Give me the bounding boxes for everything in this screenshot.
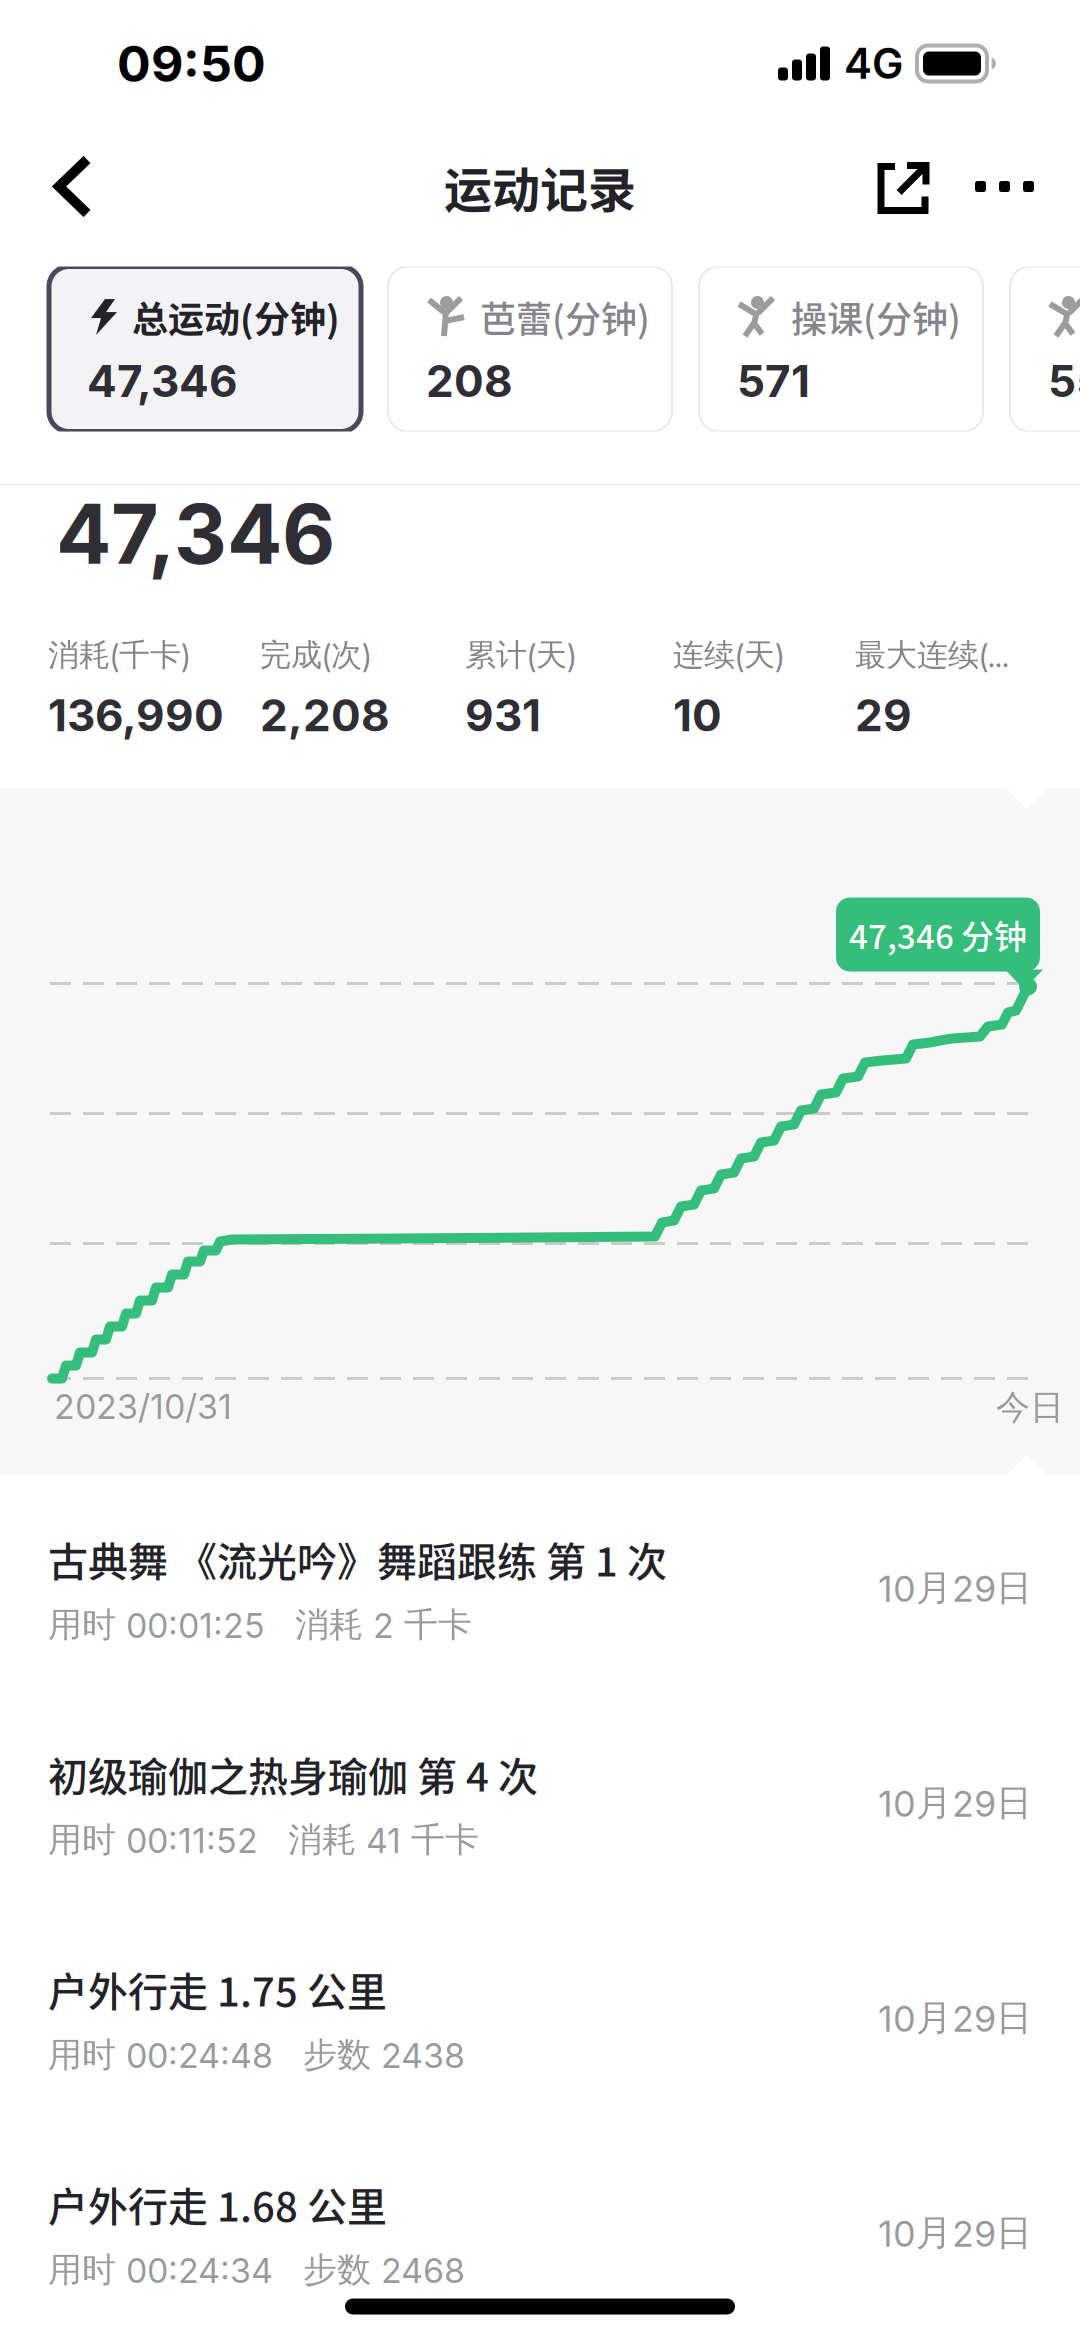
staticText: 消耗 41 千卡 — [288, 1819, 479, 1861]
staticText: 完成(次) — [260, 636, 371, 674]
staticText: 10月29日 — [878, 1996, 1032, 2040]
staticText: 连续(天) — [673, 636, 784, 674]
button[interactable]: 跳绳(分钟) — [1010, 266, 1080, 431]
staticText: 47,346 — [87, 355, 238, 407]
staticText: 571 — [737, 355, 810, 407]
staticText: 总运动(分钟) — [132, 291, 340, 343]
button[interactable]: 古典舞 《流光吟》舞蹈跟练 第 1 次 — [0, 1480, 1080, 1695]
button[interactable]: More — [933, 154, 1080, 218]
staticText: 最大连续(... — [855, 636, 1009, 674]
staticText: 2,208 — [260, 689, 390, 741]
staticText: 今日 — [996, 1386, 1064, 1428]
staticText: 10月29日 — [878, 1566, 1032, 1610]
staticText: 步数 2438 — [303, 2034, 465, 2076]
button[interactable]: 芭蕾(分钟) — [388, 266, 672, 431]
button[interactable]: 总运动(分钟) — [49, 266, 361, 431]
staticText: 136,990 — [48, 689, 224, 741]
staticText: 用时 00:24:48 — [48, 2034, 273, 2076]
staticText: 208 — [426, 355, 513, 407]
staticText: 用时 00:11:52 — [48, 1819, 258, 1861]
button[interactable]: Share — [869, 154, 933, 218]
button[interactable]: 户外行走 1.68 公里 — [0, 2125, 1080, 2339]
button[interactable]: 操课(分钟) — [699, 266, 983, 431]
button[interactable]: 初级瑜伽之热身瑜伽 第 4 次 — [0, 1695, 1080, 1910]
staticText: 09:50 — [117, 34, 266, 93]
staticText: 户外行走 1.75 公里 — [48, 1960, 387, 2018]
staticText: 芭蕾(分钟) — [480, 291, 650, 343]
staticText: 29 — [855, 689, 912, 741]
staticText: 47,346 — [56, 485, 335, 582]
staticText: 用时 00:24:34 — [48, 2249, 273, 2291]
button[interactable]: Back — [0, 157, 93, 215]
staticText: 运动记录 — [444, 152, 636, 221]
staticText: 552 — [1048, 355, 1080, 407]
staticText: 操课(分钟) — [791, 291, 961, 343]
staticText: 消耗(千卡) — [48, 636, 190, 674]
staticText: 4G — [844, 39, 903, 88]
staticText: 户外行走 1.68 公里 — [48, 2175, 387, 2233]
staticText: 初级瑜伽之热身瑜伽 第 4 次 — [48, 1745, 538, 1803]
staticText: 10月29日 — [878, 1781, 1032, 1825]
staticText: 10 — [673, 689, 722, 741]
staticText: 累计(天) — [465, 636, 576, 674]
staticText: 2023/10/31 — [54, 1386, 232, 1427]
staticText: 931 — [465, 689, 541, 741]
staticText: 47,346 分钟 — [849, 911, 1027, 958]
staticText: 古典舞 《流光吟》舞蹈跟练 第 1 次 — [48, 1530, 667, 1588]
button[interactable]: 户外行走 1.75 公里 — [0, 1910, 1080, 2125]
staticText: 10月29日 — [878, 2211, 1032, 2255]
staticText: 消耗 2 千卡 — [295, 1604, 472, 1646]
staticText: 步数 2468 — [303, 2249, 465, 2291]
staticText: 用时 00:01:25 — [48, 1604, 265, 1646]
